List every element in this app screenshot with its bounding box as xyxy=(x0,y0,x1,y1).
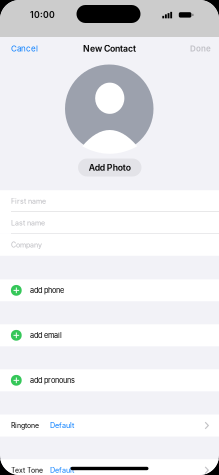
staticText: Company xyxy=(11,241,42,249)
staticText: add email xyxy=(30,331,62,340)
staticText: Last name xyxy=(11,219,45,227)
staticText: Text Tone xyxy=(11,466,43,474)
staticText: Default xyxy=(50,421,74,430)
staticText: Ringtone xyxy=(11,421,39,430)
button[interactable]: Ringtone xyxy=(0,414,219,436)
button[interactable]: add pronouns xyxy=(0,369,219,391)
button[interactable]: add phone xyxy=(0,279,219,301)
button[interactable]: Cancel xyxy=(11,39,51,57)
button[interactable]: Done xyxy=(171,39,211,57)
staticText: Default xyxy=(50,466,74,474)
button[interactable]: First name xyxy=(0,190,219,212)
button[interactable]: Last name xyxy=(0,212,219,234)
staticText: add pronouns xyxy=(30,376,75,385)
button[interactable]: Add Photo xyxy=(78,158,141,176)
staticText: 10:00 xyxy=(30,9,55,20)
button[interactable]: Text Tone xyxy=(0,459,219,475)
staticText: add phone xyxy=(30,286,64,295)
staticText: New Contact xyxy=(83,43,136,54)
staticText: Done xyxy=(190,44,211,53)
button[interactable]: add email xyxy=(0,324,219,346)
button[interactable]: Company xyxy=(0,234,219,256)
staticText: Cancel xyxy=(11,44,38,53)
staticText: Add Photo xyxy=(89,162,131,173)
staticText: First name xyxy=(11,197,46,205)
